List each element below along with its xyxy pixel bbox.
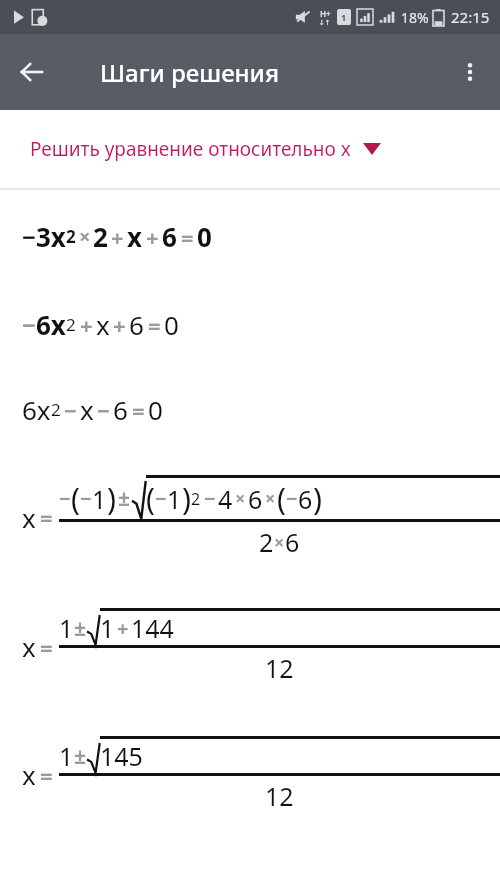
staticText: 6: [298, 482, 313, 516]
staticText: +: [146, 222, 159, 252]
staticText: =: [40, 502, 53, 532]
button[interactable]: 6x: [0, 367, 500, 452]
staticText: 6: [248, 482, 263, 516]
staticText: (: [277, 478, 286, 519]
staticText: 0: [148, 392, 163, 427]
staticText: 2: [93, 219, 108, 254]
staticText: x: [22, 757, 36, 792]
staticText: +: [117, 615, 129, 642]
staticText: −: [286, 485, 298, 512]
staticText: ↓↑: [319, 19, 331, 27]
staticText: x: [96, 307, 110, 342]
staticText: 4: [218, 482, 233, 516]
staticText: ×: [265, 486, 276, 511]
staticText: (: [71, 478, 80, 519]
staticText: ): [313, 478, 322, 519]
staticText: ×: [235, 486, 246, 511]
staticText: =: [181, 222, 194, 252]
button[interactable]: More options: [446, 48, 494, 96]
staticText: 1: [100, 611, 115, 645]
staticText: 0: [197, 219, 212, 254]
staticText: 2: [66, 225, 76, 248]
staticText: (: [146, 478, 155, 519]
staticText: −: [80, 485, 92, 512]
staticText: 6: [129, 307, 144, 342]
staticText: 1: [59, 611, 74, 645]
staticText: 6: [113, 392, 128, 427]
staticText: x: [22, 500, 36, 535]
staticText: 6: [162, 219, 177, 254]
staticText: x: [22, 629, 36, 664]
staticText: 2: [191, 488, 201, 510]
staticText: =: [40, 632, 53, 662]
staticText: 12: [265, 779, 294, 813]
staticText: ±: [74, 614, 87, 643]
staticText: −: [155, 485, 167, 512]
staticText: x: [80, 392, 94, 427]
button[interactable]: −: [0, 190, 500, 282]
staticText: 6x: [22, 392, 51, 427]
staticText: 145: [100, 739, 143, 773]
button[interactable]: x: [0, 582, 500, 710]
staticText: −: [204, 485, 216, 512]
staticText: x: [127, 219, 143, 254]
staticText: 2: [66, 313, 76, 336]
staticText: +: [111, 222, 124, 252]
button[interactable]: x: [0, 452, 500, 582]
staticText: H+: [320, 8, 331, 19]
staticText: 22:15: [451, 7, 490, 27]
staticText: ): [107, 478, 116, 519]
staticText: =: [148, 310, 161, 340]
staticText: 6x: [36, 307, 66, 342]
button[interactable]: Back: [8, 48, 56, 96]
staticText: 12: [265, 651, 294, 685]
staticText: −: [64, 395, 77, 425]
staticText: 18%: [401, 8, 429, 27]
button[interactable]: −: [0, 282, 500, 367]
staticText: −: [22, 308, 36, 341]
staticText: ): [182, 478, 191, 519]
staticText: −: [97, 395, 110, 425]
staticText: +: [80, 310, 93, 340]
staticText: =: [132, 395, 145, 425]
staticText: −: [59, 485, 71, 512]
staticText: 0: [164, 307, 179, 342]
staticText: 1: [92, 482, 107, 516]
staticText: =: [40, 760, 53, 790]
staticText: 1: [59, 739, 74, 773]
staticText: Решить уравнение относительно x: [30, 136, 351, 162]
staticText: 144: [131, 611, 174, 645]
staticText: 1: [167, 482, 182, 516]
staticText: 6: [285, 525, 300, 559]
staticText: −: [22, 220, 36, 253]
staticText: 3x: [36, 219, 66, 254]
staticText: 2: [259, 525, 274, 559]
staticText: +: [113, 310, 126, 340]
staticText: 2: [51, 398, 61, 421]
staticText: ×: [274, 530, 285, 555]
button[interactable]: Решить уравнение относительно x: [0, 110, 500, 188]
staticText: ×: [79, 223, 91, 250]
staticText: ±: [118, 484, 131, 513]
button[interactable]: x: [0, 710, 500, 838]
staticText: Шаги решения: [100, 56, 279, 89]
staticText: 1: [341, 11, 347, 23]
staticText: ±: [74, 742, 87, 771]
